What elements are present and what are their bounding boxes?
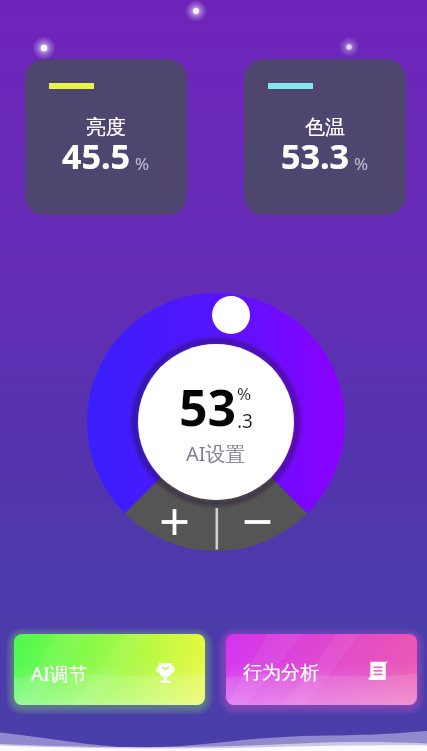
staticText: % [135, 152, 150, 175]
button[interactable]: 行为分析 [226, 634, 417, 705]
staticText: AI设置 [186, 440, 246, 467]
button[interactable]: 亮度 [25, 59, 187, 215]
staticText: 亮度 [86, 115, 126, 140]
staticText: 色温 [305, 115, 345, 140]
staticText: AI调节 [31, 661, 88, 687]
button[interactable]: AI调节 [14, 634, 205, 705]
staticText: 45.5 [62, 133, 130, 179]
staticText: 53.3 [281, 133, 349, 179]
staticText: .3 [237, 408, 253, 434]
staticText: 行为分析 [243, 661, 319, 685]
other: Adjust level [87, 293, 345, 551]
staticText: % [354, 152, 369, 175]
staticText: 53 [179, 373, 237, 441]
staticText: % [237, 382, 252, 405]
other: Trophy [153, 660, 178, 685]
other: Report [366, 660, 390, 684]
button[interactable]: 色温 [244, 59, 406, 215]
